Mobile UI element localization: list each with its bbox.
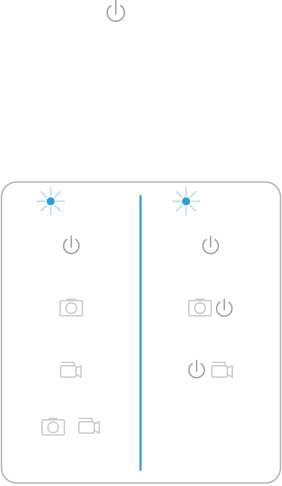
button[interactable]: Power <box>190 225 231 267</box>
button[interactable]: Video <box>48 353 94 390</box>
button[interactable]: Video <box>70 413 108 442</box>
button[interactable]: Brightness <box>31 182 70 221</box>
button[interactable]: Video <box>203 357 241 386</box>
button[interactable]: Power <box>94 0 137 34</box>
button[interactable]: Brightness <box>167 182 205 221</box>
button[interactable]: Power <box>51 225 92 266</box>
button[interactable]: Camera <box>47 288 95 329</box>
button[interactable]: Camera <box>33 411 73 444</box>
button[interactable]: Power <box>180 353 213 387</box>
button[interactable]: Power <box>208 292 241 325</box>
button[interactable]: Camera <box>180 292 220 325</box>
